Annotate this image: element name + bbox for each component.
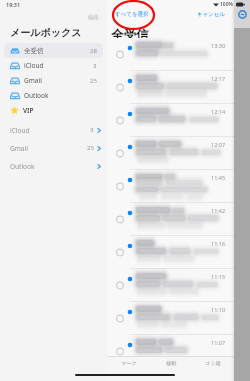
staticText: iCloud	[10, 126, 30, 135]
button[interactable]: 11:15	[107, 269, 234, 302]
staticText: 11:16	[211, 240, 226, 247]
button[interactable]: 移動	[150, 357, 192, 370]
button[interactable]: Outlook	[4, 88, 103, 103]
button[interactable]: 11:45	[107, 170, 234, 203]
staticText: メールボックス	[10, 26, 82, 39]
button[interactable]: 13:30	[107, 38, 234, 71]
button[interactable]: iCloud	[4, 58, 103, 73]
button[interactable]: マーク	[107, 357, 150, 370]
staticText: 移動	[166, 360, 177, 367]
button[interactable]: 11:10	[107, 302, 234, 335]
staticText: 11:45	[211, 174, 226, 181]
staticText: 全受信	[24, 47, 44, 55]
staticText: 3	[90, 126, 94, 134]
button[interactable]: 11:07	[107, 335, 234, 368]
button[interactable]: すべてを選択	[115, 11, 149, 18]
staticText: 25	[90, 77, 97, 85]
staticText: iCloud	[24, 61, 44, 70]
staticText: VIP	[23, 106, 34, 115]
staticText: マーク	[121, 360, 137, 367]
button[interactable]: ゴミ箱	[192, 357, 234, 370]
staticText: Outlook	[24, 91, 49, 100]
staticText: 28	[90, 47, 97, 55]
staticText: 100%	[220, 1, 233, 8]
button[interactable]: iCloud	[10, 121, 101, 139]
button[interactable]: Gmail	[10, 139, 101, 157]
staticText: 12:07	[211, 141, 226, 148]
button[interactable]: 編集	[88, 14, 99, 21]
staticText: 25	[87, 144, 94, 152]
button[interactable]: 11:42	[107, 203, 234, 236]
staticText: 11:07	[211, 339, 226, 346]
staticText: 13:30	[211, 42, 226, 49]
staticText: Gmail	[10, 144, 28, 153]
button[interactable]: Outlook	[10, 157, 101, 175]
staticText: キャンセル	[197, 11, 226, 18]
staticText: 12:17	[211, 75, 226, 82]
button[interactable]: 11:16	[107, 236, 234, 269]
button[interactable]: 12:07	[107, 137, 234, 170]
staticText: 全受信	[111, 27, 149, 38]
staticText: Outlook	[10, 162, 35, 171]
staticText: ゴミ箱	[205, 360, 221, 367]
staticText: 編集	[88, 14, 99, 21]
staticText: 12:14	[211, 108, 226, 115]
staticText: 11:15	[211, 273, 226, 280]
staticText: 11:10	[211, 306, 226, 313]
staticText: 3	[93, 62, 97, 70]
button[interactable]: 全受信	[4, 43, 103, 58]
button[interactable]: Compose	[238, 10, 247, 19]
button[interactable]: Gmail	[4, 73, 103, 88]
button[interactable]: キャンセル	[197, 11, 226, 18]
button[interactable]: 12:17	[107, 71, 234, 104]
staticText: 11:42	[211, 207, 226, 214]
staticText: すべてを選択	[115, 11, 149, 18]
staticText: 19:31	[6, 1, 21, 8]
button[interactable]: VIP	[4, 103, 103, 118]
staticText: Gmail	[24, 76, 42, 85]
button[interactable]: 12:14	[107, 104, 234, 137]
